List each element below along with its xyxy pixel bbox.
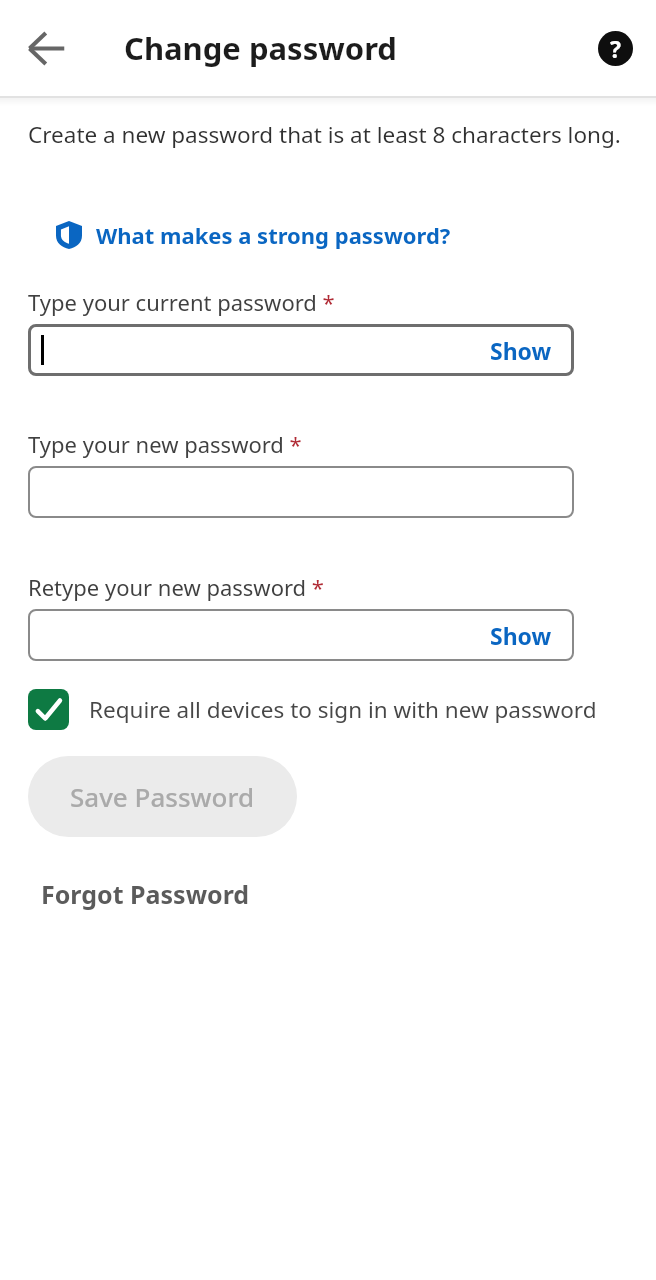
- staticText: Retype your new password *: [28, 572, 324, 602]
- button[interactable]: Require all devices to sign in with new …: [28, 689, 597, 730]
- button[interactable]: Show: [28, 324, 574, 376]
- staticText: What makes a strong password?: [96, 220, 451, 250]
- button[interactable]: What makes a strong password?: [56, 220, 451, 250]
- staticText: Type your new password *: [28, 429, 302, 459]
- staticText: Type your current password *: [28, 287, 335, 317]
- button[interactable]: [22, 24, 70, 72]
- button[interactable]: Show: [490, 620, 552, 651]
- button[interactable]: Show: [28, 609, 574, 661]
- button[interactable]: [28, 466, 574, 518]
- staticText: Save Password: [70, 779, 255, 814]
- button[interactable]: ?: [598, 31, 633, 66]
- staticText: Forgot Password: [41, 877, 250, 911]
- button[interactable]: Show: [490, 335, 552, 366]
- button[interactable]: Forgot Password: [41, 877, 250, 911]
- staticText: Change password: [124, 27, 397, 69]
- staticText: Show: [490, 335, 552, 366]
- staticText: ?: [610, 33, 621, 64]
- staticText: Require all devices to sign in with new …: [89, 694, 597, 725]
- staticText: Create a new password that is at least 8…: [28, 119, 621, 150]
- button[interactable]: Save Password: [28, 756, 297, 837]
- staticText: Show: [490, 620, 552, 651]
